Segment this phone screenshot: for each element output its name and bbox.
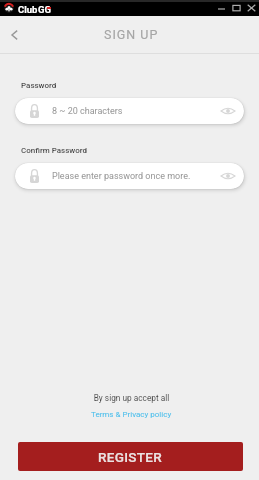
staticText: 8 ~ 20 characters bbox=[52, 106, 123, 117]
staticText: REGISTER bbox=[98, 449, 163, 465]
button[interactable]: Terms & Privacy policy bbox=[89, 409, 174, 420]
staticText: By sign up accept all bbox=[2, 393, 259, 403]
button[interactable]: Show password bbox=[212, 163, 244, 189]
button[interactable]: Show password bbox=[212, 98, 244, 124]
staticText: SIGN UP bbox=[104, 27, 159, 42]
button[interactable]: Maximize bbox=[229, 0, 244, 16]
staticText: Club bbox=[18, 4, 38, 15]
staticText: Confirm Password bbox=[21, 146, 88, 155]
button[interactable]: 8 ~ 20 characters bbox=[15, 98, 244, 124]
button[interactable]: REGISTER bbox=[18, 442, 243, 471]
button[interactable]: Please enter password once more. bbox=[15, 163, 244, 189]
button[interactable]: Close bbox=[244, 0, 259, 16]
staticText: Password bbox=[21, 81, 57, 90]
staticText: GG bbox=[38, 4, 51, 15]
button[interactable]: Back bbox=[3, 24, 25, 46]
button[interactable]: Minimize bbox=[214, 0, 229, 16]
staticText: Please enter password once more. bbox=[52, 171, 191, 182]
